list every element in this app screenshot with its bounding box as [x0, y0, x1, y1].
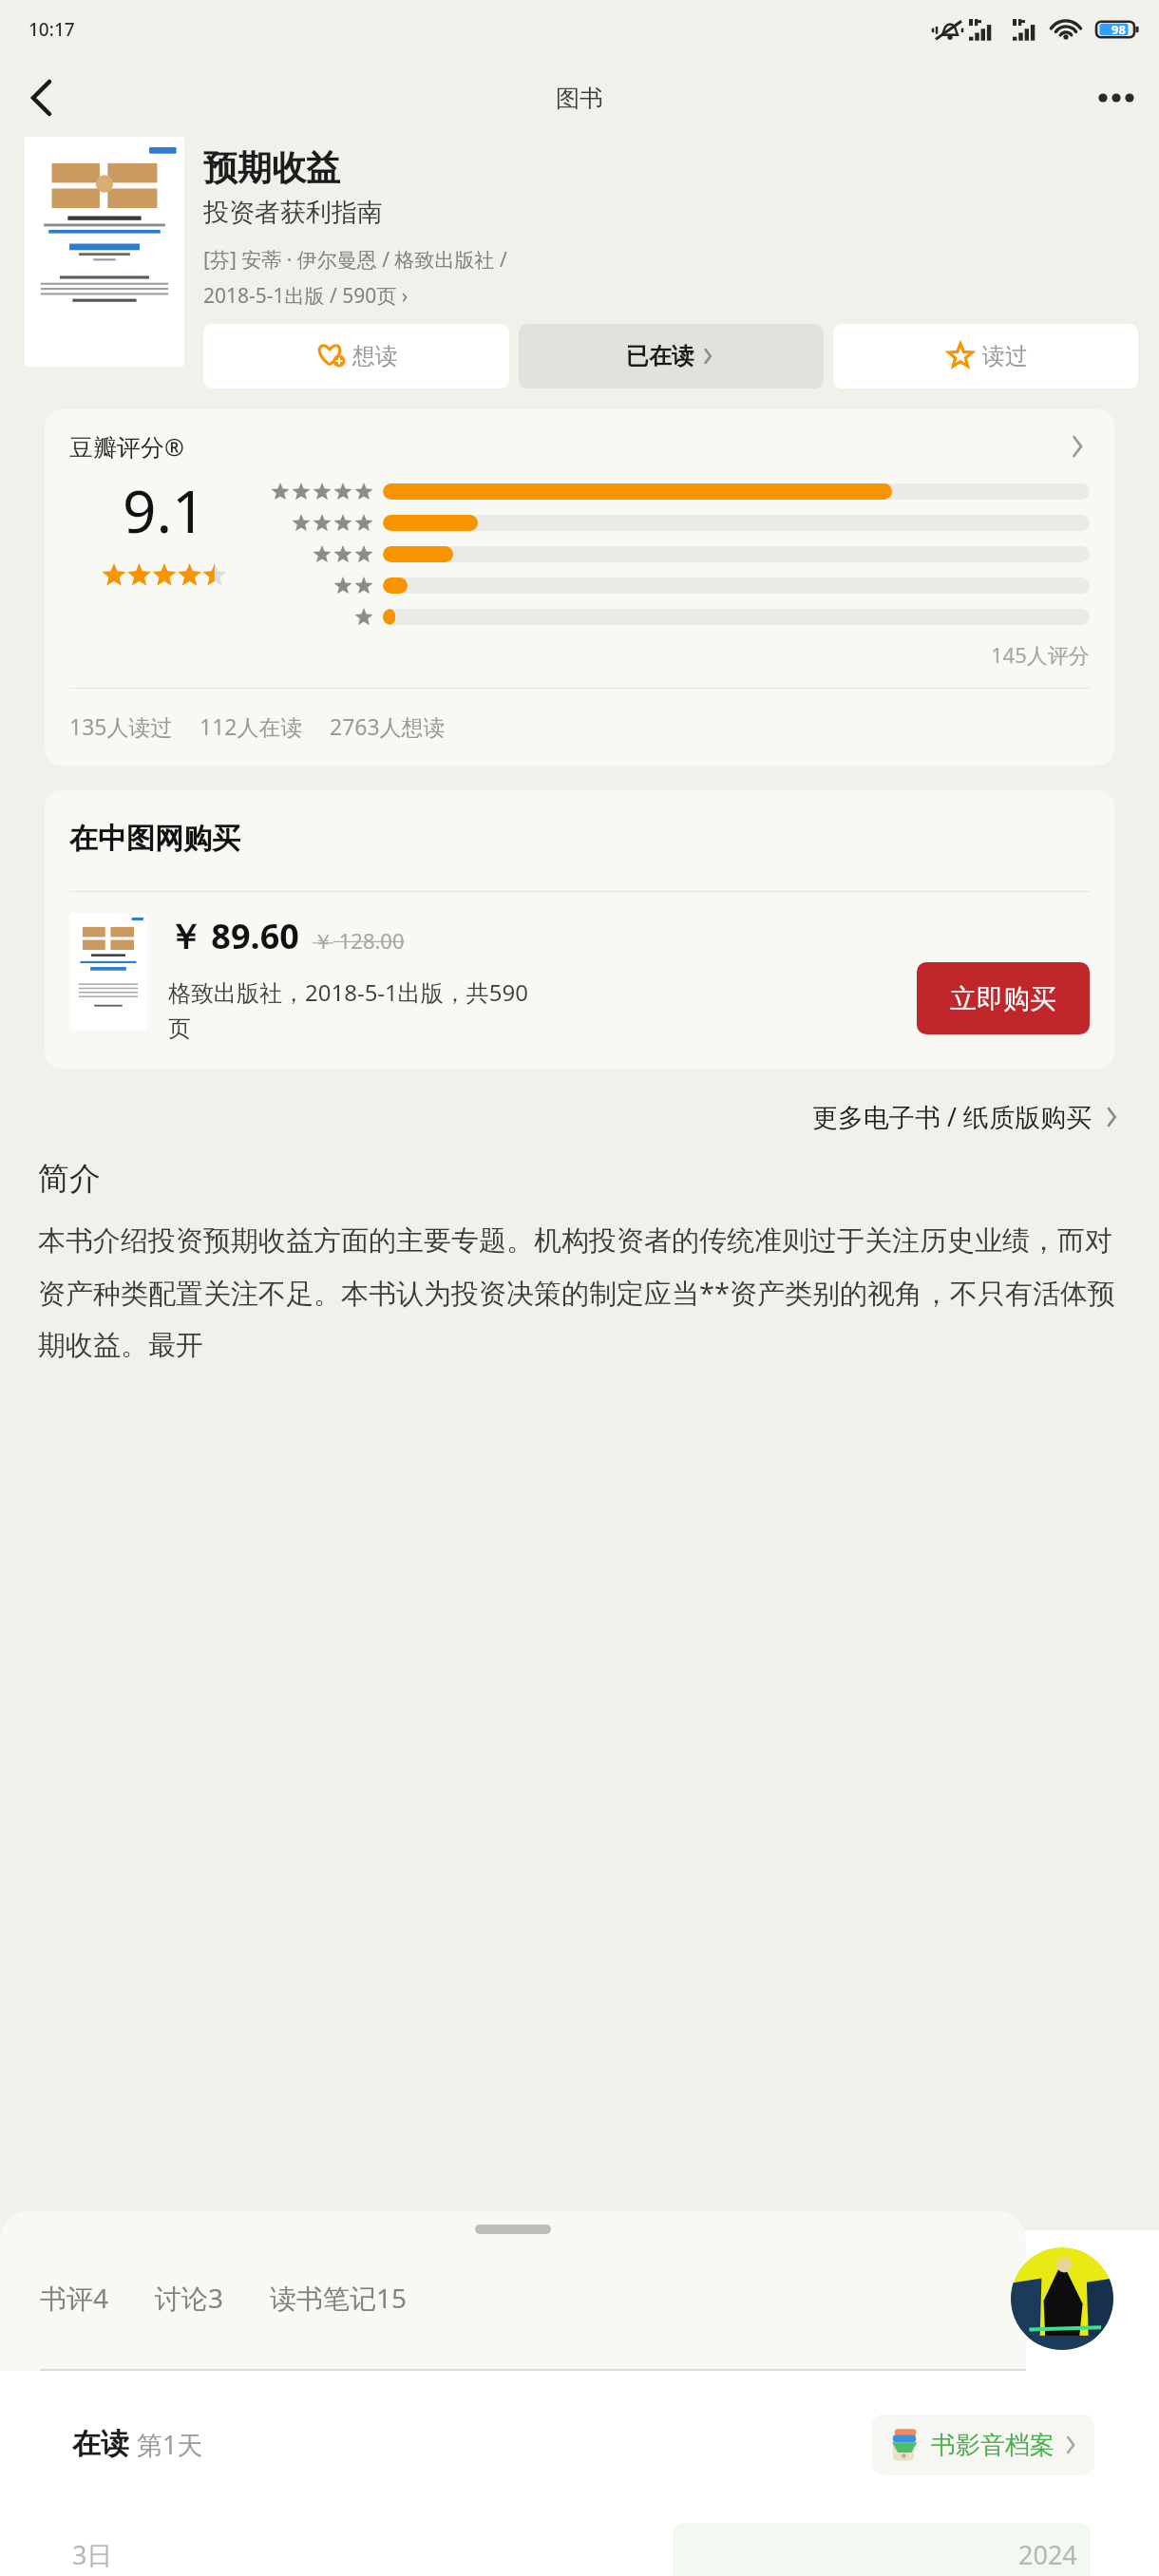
staticText: 想读 — [352, 342, 398, 370]
staticText: 10:17 — [28, 17, 75, 42]
staticText: 第1天 — [137, 2427, 203, 2462]
button[interactable]: 讨论3 — [155, 2280, 224, 2316]
staticText: 2024 — [1018, 2537, 1077, 2572]
button[interactable]: 已在读 — [519, 324, 824, 388]
button[interactable]: [芬] 安蒂 · 伊尔曼恩 / 格致出版社 / 2018-5-1出版 / 590… — [203, 246, 507, 309]
staticText: 简介 — [38, 1159, 101, 1199]
button[interactable] — [25, 137, 184, 367]
button[interactable]: Profile — [1011, 2247, 1113, 2350]
staticText: [芬] 安蒂 · 伊尔曼恩 / 格致出版社 / 2018-5-1出版 / 590… — [203, 246, 507, 309]
staticText: 图书 — [556, 84, 603, 113]
staticText: 豆瓣评分® — [69, 430, 184, 463]
button[interactable]: 读书笔记15 — [270, 2280, 408, 2316]
button[interactable]: Back — [11, 68, 70, 127]
staticText: 已在读 — [626, 342, 694, 370]
staticText: 预期收益 — [203, 146, 340, 189]
button[interactable]: 135人读过 — [69, 711, 173, 741]
button[interactable]: ￥ 89.60 — [45, 892, 1114, 1069]
button[interactable]: More options — [1087, 68, 1146, 127]
staticText: ￥ 89.60 — [168, 913, 299, 959]
staticText: 读过 — [982, 342, 1028, 370]
button[interactable]: 在读 — [40, 2386, 1119, 2576]
button[interactable]: 2763人想读 — [330, 711, 446, 741]
staticText: 格致出版社，2018-5-1出版，共590 页 — [168, 976, 529, 1044]
staticText: 本书介绍投资预期收益方面的主要专题。机构投资者的传统准则过于关注历史业绩，而对资… — [38, 1223, 1121, 1363]
button[interactable]: 书评4 — [40, 2280, 109, 2316]
staticText: 98 — [1111, 21, 1126, 38]
button[interactable]: 更多电子书 / 纸质版购买 — [0, 1069, 1159, 1134]
button[interactable]: 立即购买 — [917, 962, 1090, 1034]
staticText: 9.1 — [123, 470, 206, 550]
staticText: 3日 — [72, 2537, 113, 2572]
button[interactable]: 豆瓣评分® — [45, 409, 1114, 463]
staticText: 投资者获利指南 — [203, 197, 383, 229]
staticText: 在中图网购买 — [69, 821, 240, 857]
staticText: 更多电子书 / 纸质版购买 — [812, 1099, 1092, 1134]
button[interactable]: 读过 — [833, 324, 1138, 388]
button[interactable]: 书影音档案 — [872, 2415, 1094, 2475]
button[interactable]: 想读 — [203, 324, 509, 388]
staticText: 立即购买 — [950, 982, 1056, 1015]
staticText: 在读 — [72, 2426, 129, 2462]
staticText: 书影音档案 — [931, 2430, 1054, 2461]
staticText: 145人评分 — [991, 640, 1090, 669]
staticText: ￥ 128.00 — [313, 926, 405, 955]
button[interactable]: 112人在读 — [199, 711, 303, 741]
